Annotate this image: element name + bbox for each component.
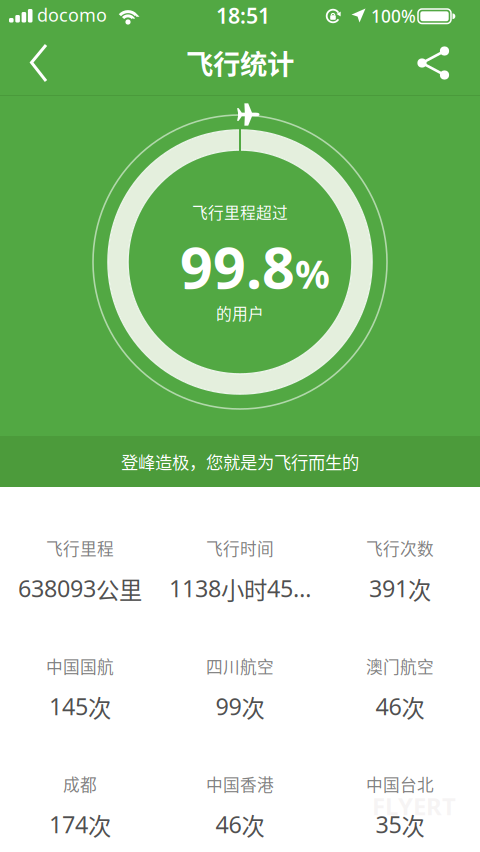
staticText: 飞行里程 xyxy=(46,536,114,560)
button[interactable] xyxy=(0,36,60,95)
staticText: 99次 xyxy=(215,690,264,724)
staticText: 中国国航 xyxy=(46,654,114,678)
staticText: 99.8% xyxy=(180,228,330,304)
staticText: 飞行统计 xyxy=(186,43,294,82)
staticText: 145次 xyxy=(49,690,111,724)
button[interactable] xyxy=(392,36,462,95)
staticText: 飞行里程超过 xyxy=(192,201,288,223)
staticText: FLYERT xyxy=(372,790,456,822)
staticText: 中国台北 xyxy=(366,772,434,796)
staticText: 四川航空 xyxy=(206,654,274,678)
staticText: 18:51 xyxy=(216,1,270,30)
staticText: 1138小时45… xyxy=(169,572,311,606)
staticText: 中国香港 xyxy=(206,772,274,796)
staticText: 100% xyxy=(371,4,416,27)
staticText: 391次 xyxy=(369,572,431,606)
staticText: docomo xyxy=(37,2,107,27)
staticText: 174次 xyxy=(49,808,111,842)
staticText: 的用户 xyxy=(216,302,264,324)
staticText: 飞行次数 xyxy=(366,536,434,560)
staticText: 638093公里 xyxy=(18,572,142,606)
staticText: 飞行时间 xyxy=(206,536,274,560)
staticText: 澳门航空 xyxy=(366,654,434,678)
staticText: 成都 xyxy=(63,772,97,796)
staticText: 登峰造极，您就是为飞行而生的 xyxy=(121,449,359,474)
staticText: 35次 xyxy=(375,808,424,842)
staticText: 46次 xyxy=(215,808,264,842)
staticText: 46次 xyxy=(375,690,424,724)
